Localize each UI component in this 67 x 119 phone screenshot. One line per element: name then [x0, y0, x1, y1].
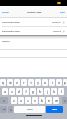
staticText: z: [13, 99, 15, 103]
staticText: b: [41, 99, 43, 103]
button[interactable]: Shift: [0, 97, 8, 104]
button[interactable]: space: [14, 106, 45, 113]
staticText: e: [16, 81, 18, 85]
staticText: y: [37, 81, 39, 85]
staticText: l: [61, 90, 62, 94]
button[interactable]: s: [9, 88, 15, 95]
button[interactable]: n: [46, 97, 52, 104]
button[interactable]: camera: [0, 39, 67, 49]
button[interactable]: q: [0, 79, 6, 86]
staticText: u: [44, 81, 46, 85]
staticText: i: [52, 81, 53, 85]
staticText: done: [52, 108, 57, 111]
button[interactable]: j: [44, 88, 50, 95]
button[interactable]: Surveillance Kind: [0, 18, 67, 26]
button[interactable]: Cancel: [0, 6, 11, 18]
button[interactable]: m: [53, 97, 59, 104]
staticText: Custom Tags: [27, 11, 42, 14]
staticText: w: [9, 81, 12, 85]
button[interactable]: 123: [0, 106, 7, 113]
staticText: k: [53, 90, 55, 94]
button[interactable]: k: [51, 88, 57, 95]
staticText: x: [20, 99, 22, 103]
button[interactable]: done: [46, 106, 63, 113]
button[interactable]: y: [35, 79, 41, 86]
button[interactable]: z: [11, 97, 17, 104]
staticText: camera: [2, 40, 10, 43]
staticText: Save: [60, 11, 65, 14]
button[interactable]: o: [56, 79, 62, 86]
staticText: Outdoor: [52, 21, 61, 24]
button[interactable]: p: [63, 79, 67, 86]
button[interactable]: l: [58, 88, 64, 95]
staticText: r: [23, 81, 25, 85]
staticText: n: [48, 99, 50, 103]
staticText: o: [58, 81, 60, 85]
staticText: h: [39, 90, 41, 94]
staticText: s: [11, 90, 13, 94]
button[interactable]: v: [32, 97, 38, 104]
button[interactable]: Surveillance Type: [0, 27, 67, 35]
button[interactable]: g: [30, 88, 36, 95]
staticText: j: [47, 90, 48, 94]
staticText: p: [64, 81, 66, 85]
staticText: Camera: [53, 30, 61, 33]
staticText: a: [4, 90, 6, 94]
button[interactable]: f: [23, 88, 29, 95]
button[interactable]: a: [2, 88, 8, 95]
button[interactable]: d: [16, 88, 22, 95]
staticText: space: [27, 108, 33, 111]
button[interactable]: b: [39, 97, 45, 104]
button[interactable]: Delete: [62, 97, 67, 104]
button[interactable]: Emoji keyboard: [8, 106, 13, 113]
staticText: Cancel: [2, 11, 9, 14]
staticText: Surveillance Type: [2, 30, 20, 33]
staticText: q: [2, 81, 4, 85]
button[interactable]: i: [49, 79, 55, 86]
button[interactable]: c: [25, 97, 31, 104]
staticText: m: [55, 99, 58, 103]
staticText: Surveillance Kind: [2, 21, 20, 24]
button[interactable]: r: [21, 79, 27, 86]
staticText: f: [25, 90, 27, 94]
button[interactable]: h: [37, 88, 43, 95]
staticText: t: [30, 81, 32, 85]
button[interactable]: w: [7, 79, 13, 86]
button[interactable]: u: [42, 79, 48, 86]
button[interactable]: Save: [58, 6, 67, 18]
staticText: 123: [2, 108, 6, 111]
staticText: g: [32, 90, 34, 94]
button[interactable]: x: [18, 97, 24, 104]
staticText: v: [34, 99, 36, 103]
button[interactable]: t: [28, 79, 34, 86]
staticText: c: [27, 99, 29, 103]
staticText: d: [18, 90, 20, 94]
button[interactable]: e: [14, 79, 20, 86]
